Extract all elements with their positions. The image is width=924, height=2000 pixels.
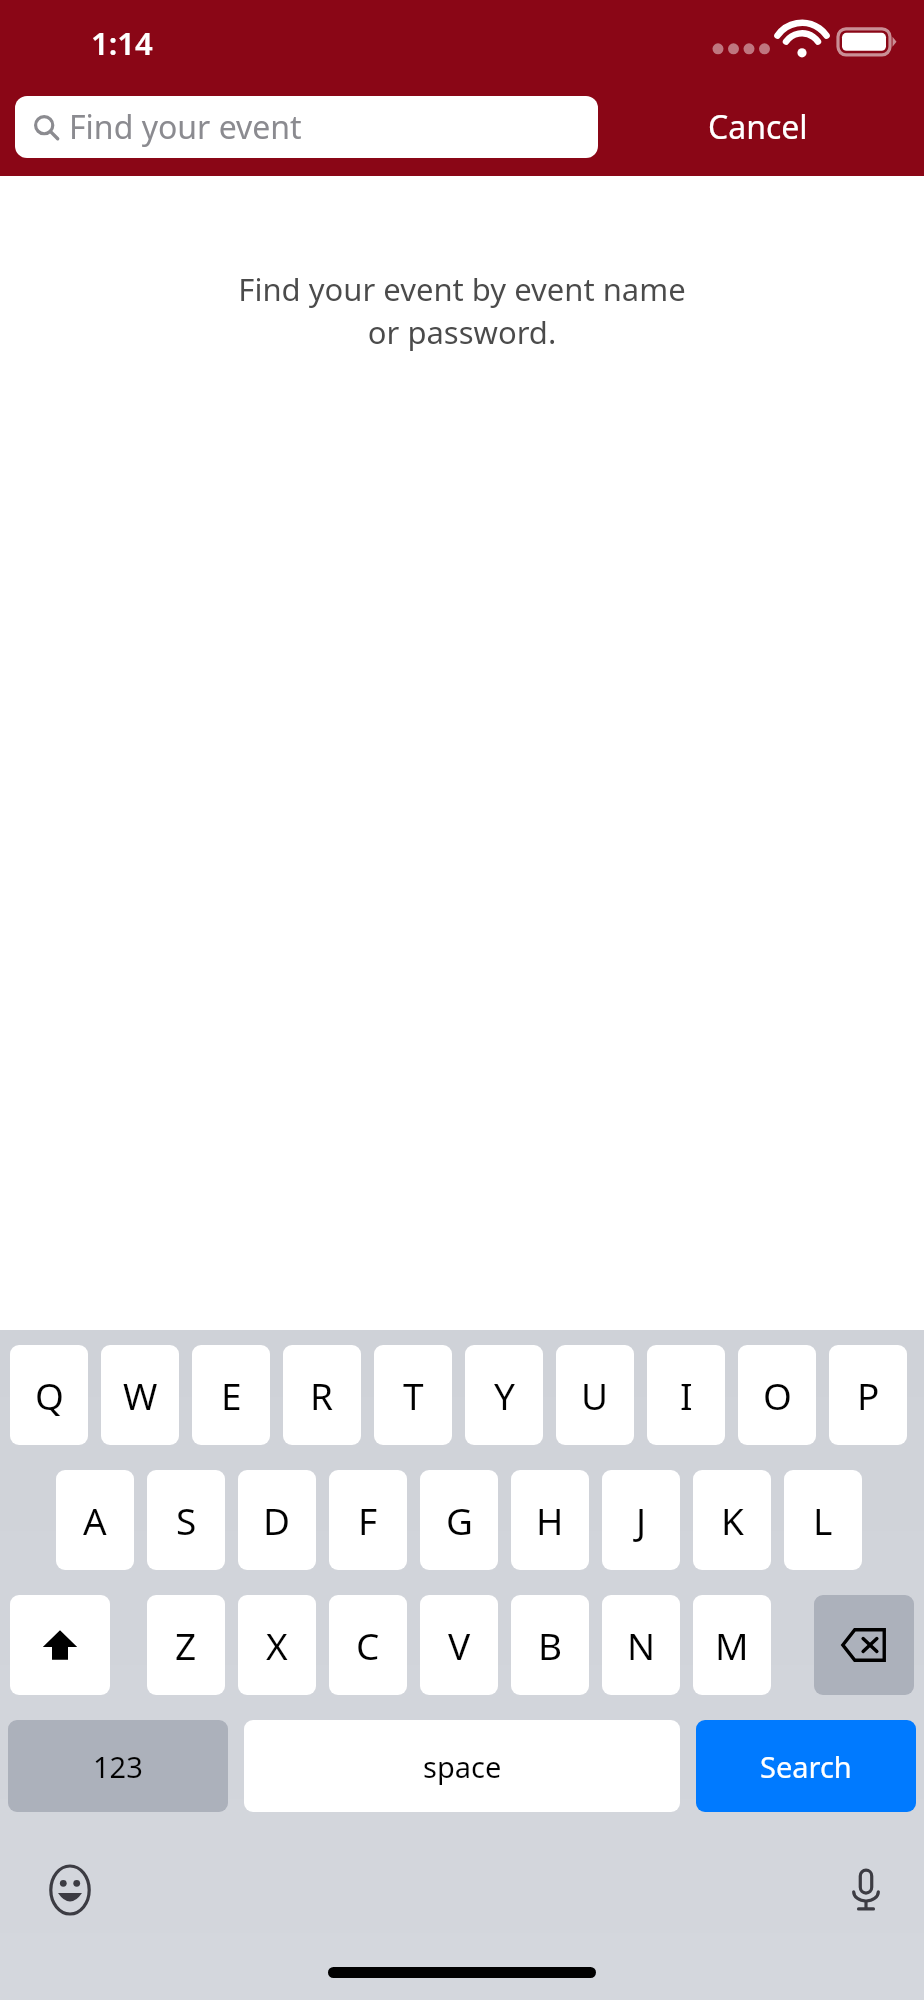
button[interactable]: D <box>238 1470 316 1570</box>
button[interactable]: Backspace <box>814 1595 914 1695</box>
button[interactable]: H <box>511 1470 589 1570</box>
button[interactable]: B <box>511 1595 589 1695</box>
staticText: E <box>221 1370 242 1420</box>
button[interactable]: Cancel <box>608 96 908 158</box>
staticText: N <box>627 1620 656 1670</box>
staticText: space <box>423 1747 502 1786</box>
button[interactable]: X <box>238 1595 316 1695</box>
button[interactable]: N <box>602 1595 680 1695</box>
button[interactable]: Find your event <box>15 96 598 158</box>
staticText: T <box>403 1370 424 1420</box>
staticText: 1:14 <box>91 22 153 64</box>
button[interactable]: F <box>329 1470 407 1570</box>
button[interactable]: I <box>647 1345 725 1445</box>
staticText: Search <box>760 1747 852 1786</box>
staticText: Cancel <box>708 105 808 149</box>
staticText: B <box>538 1620 563 1670</box>
staticText: V <box>448 1620 471 1670</box>
button[interactable]: C <box>329 1595 407 1695</box>
staticText: H <box>536 1495 564 1545</box>
button[interactable]: J <box>602 1470 680 1570</box>
staticText: X <box>266 1620 288 1670</box>
staticText: Find your event by event name or passwor… <box>0 268 924 353</box>
button[interactable]: W <box>101 1345 179 1445</box>
staticText: M <box>715 1620 749 1670</box>
staticText: O <box>763 1370 792 1420</box>
staticText: P <box>857 1370 880 1420</box>
staticText: R <box>310 1370 334 1420</box>
staticText: L <box>813 1495 833 1545</box>
button[interactable]: Emoji keyboard <box>38 1858 102 1922</box>
staticText: Z <box>175 1620 197 1670</box>
staticText: F <box>358 1495 378 1545</box>
button[interactable]: Y <box>465 1345 543 1445</box>
button[interactable]: E <box>192 1345 270 1445</box>
staticText: S <box>176 1495 197 1545</box>
button[interactable]: Dictation <box>834 1858 898 1922</box>
staticText: U <box>581 1370 609 1420</box>
staticText: C <box>356 1620 380 1670</box>
staticText: J <box>636 1495 647 1545</box>
staticText: A <box>83 1495 107 1545</box>
button[interactable]: A <box>56 1470 134 1570</box>
button[interactable]: T <box>374 1345 452 1445</box>
staticText: Q <box>35 1370 64 1420</box>
button[interactable]: R <box>283 1345 361 1445</box>
button[interactable]: 123 <box>8 1720 228 1812</box>
staticText: D <box>263 1495 291 1545</box>
button[interactable]: P <box>829 1345 907 1445</box>
staticText: W <box>123 1370 158 1420</box>
staticText: G <box>446 1495 473 1545</box>
button[interactable]: Shift <box>10 1595 110 1695</box>
button[interactable]: O <box>738 1345 816 1445</box>
button[interactable]: L <box>784 1470 862 1570</box>
button[interactable]: U <box>556 1345 634 1445</box>
button[interactable]: V <box>420 1595 498 1695</box>
button[interactable]: K <box>693 1470 771 1570</box>
button[interactable]: M <box>693 1595 771 1695</box>
button[interactable]: Z <box>147 1595 225 1695</box>
button[interactable]: S <box>147 1470 225 1570</box>
staticText: I <box>680 1370 693 1420</box>
staticText: Y <box>494 1370 515 1420</box>
button[interactable]: Q <box>10 1345 88 1445</box>
staticText: K <box>721 1495 744 1545</box>
button[interactable]: space <box>244 1720 680 1812</box>
staticText: Find your event <box>69 105 302 149</box>
staticText: 123 <box>93 1747 143 1786</box>
button[interactable]: Search <box>696 1720 916 1812</box>
button[interactable]: G <box>420 1470 498 1570</box>
